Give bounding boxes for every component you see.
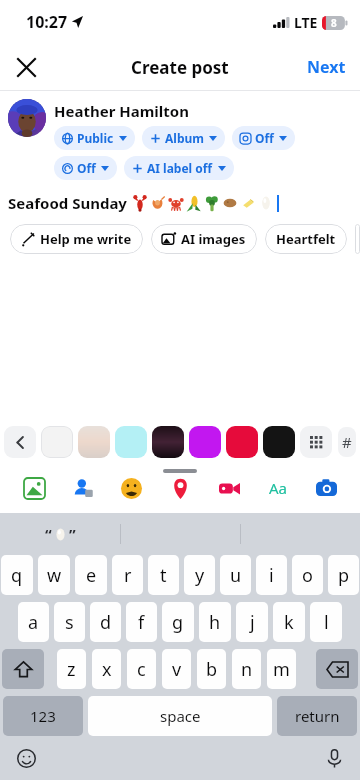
button[interactable]: More backgrounds — [300, 426, 332, 458]
button[interactable]: f — [126, 602, 157, 642]
staticText: v — [172, 657, 182, 682]
button[interactable]: v — [162, 649, 191, 689]
button[interactable]: a — [18, 602, 49, 642]
staticText: w — [47, 563, 62, 588]
button[interactable]: e — [75, 555, 107, 595]
button[interactable]: l — [310, 602, 342, 642]
staticText: h — [209, 610, 221, 635]
button[interactable]: z — [57, 649, 86, 689]
staticText: AI images — [181, 230, 246, 248]
button[interactable]: d — [90, 602, 121, 642]
staticText: s — [65, 610, 74, 635]
button[interactable]: Back — [4, 426, 36, 458]
button[interactable]: h — [199, 602, 231, 642]
button[interactable]: x — [92, 649, 121, 689]
staticText: a — [28, 610, 39, 635]
button[interactable]: Shift — [2, 649, 44, 689]
staticText: Create post — [131, 56, 229, 79]
button[interactable]: Next — [293, 48, 360, 86]
staticText: Album — [165, 130, 204, 146]
staticText: 123 — [30, 706, 56, 726]
staticText: m — [273, 657, 290, 682]
button[interactable]: Photos — [15, 469, 53, 507]
button[interactable]: u — [220, 555, 251, 595]
button[interactable]: Help me write — [10, 224, 143, 254]
button[interactable]: n — [232, 649, 261, 689]
staticText: b — [206, 657, 218, 682]
button[interactable]: Check in — [161, 469, 199, 507]
button[interactable]: Off — [232, 126, 295, 150]
button[interactable]: Live video — [210, 469, 248, 507]
button[interactable]: Emoji keyboard — [10, 742, 42, 774]
button[interactable]: q — [1, 555, 33, 595]
staticText: Seafood Sunday — [8, 193, 131, 213]
button[interactable]: Profile photo — [8, 99, 46, 137]
button[interactable]: s — [54, 602, 85, 642]
staticText: k — [284, 610, 294, 635]
staticText: x — [102, 657, 112, 682]
button[interactable]: t — [148, 555, 179, 595]
button[interactable]: AI images — [151, 224, 257, 254]
button[interactable]: 123 — [3, 696, 83, 736]
button[interactable]: r — [112, 555, 143, 595]
staticText: d — [100, 610, 112, 635]
button[interactable]: Close — [6, 47, 46, 87]
button[interactable]: Tag people — [64, 469, 102, 507]
button[interactable]: Camera — [307, 469, 345, 507]
button[interactable]: Hashtag — [338, 427, 356, 457]
button[interactable]: AI label off — [124, 156, 234, 180]
button[interactable]: Off — [54, 156, 117, 180]
button[interactable]: Background colour — [263, 426, 295, 458]
button[interactable]: Background colour — [189, 426, 221, 458]
button[interactable]: Heartfelt — [265, 224, 347, 254]
button[interactable]: b — [197, 649, 226, 689]
button[interactable]: Album — [142, 126, 225, 150]
button[interactable]: space — [88, 696, 272, 736]
staticText: f — [138, 610, 145, 635]
staticText: c — [137, 657, 146, 682]
button[interactable]: Dictation — [318, 742, 350, 774]
button[interactable]: Background colour — [226, 426, 258, 458]
staticText: i — [269, 563, 274, 588]
staticText: t — [160, 563, 167, 588]
staticText: Off — [77, 160, 96, 176]
staticText: Next — [307, 56, 346, 78]
button[interactable]: Fix grammar — [355, 224, 360, 254]
button[interactable]: p — [328, 555, 359, 595]
button[interactable]: j — [236, 602, 268, 642]
button[interactable]: Feeling — [112, 469, 150, 507]
button[interactable]: Background colour — [115, 426, 147, 458]
button[interactable]: o — [292, 555, 323, 595]
button[interactable]: m — [267, 649, 296, 689]
staticText: # — [342, 432, 352, 452]
button[interactable]: Background — [78, 426, 110, 458]
staticText: space — [160, 706, 201, 726]
button[interactable]: g — [162, 602, 194, 642]
staticText: p — [338, 563, 350, 588]
button[interactable]: c — [127, 649, 156, 689]
staticText: e — [86, 563, 97, 588]
button[interactable]: Public — [54, 126, 135, 150]
staticText: 10:27 — [26, 11, 68, 33]
button[interactable]: Background — [152, 426, 184, 458]
button[interactable]: Text style — [259, 469, 297, 507]
staticText: u — [230, 563, 242, 588]
staticText: return — [295, 706, 340, 726]
staticText: LTE — [294, 13, 318, 32]
button[interactable]: y — [184, 555, 215, 595]
button[interactable]: w — [38, 555, 70, 595]
button[interactable]: Background colour — [41, 426, 73, 458]
staticText: y — [195, 563, 205, 588]
button[interactable]: Backspace — [316, 649, 358, 689]
staticText: “ — [45, 524, 52, 544]
button[interactable]: return — [277, 696, 357, 736]
staticText: g — [172, 610, 184, 635]
button[interactable]: “ — [0, 513, 120, 555]
staticText: Heather Hamilton — [54, 101, 189, 121]
button[interactable]: i — [256, 555, 287, 595]
staticText: n — [241, 657, 253, 682]
staticText: r — [124, 563, 132, 588]
button[interactable]: k — [273, 602, 305, 642]
